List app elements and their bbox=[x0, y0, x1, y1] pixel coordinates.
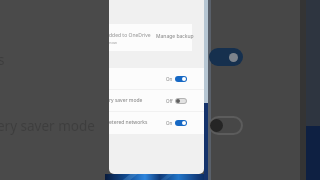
button[interactable]: dded to OneDrive bbox=[109, 24, 192, 51]
button[interactable]: etered networks bbox=[109, 112, 204, 133]
staticText: Off bbox=[166, 98, 173, 104]
staticText: ery saver mode bbox=[0, 117, 95, 135]
staticText: dded to OneDrive bbox=[109, 32, 151, 39]
staticText: Manage backup bbox=[156, 33, 194, 40]
staticText: now bbox=[109, 40, 117, 45]
button[interactable]: ry saver mode bbox=[109, 90, 204, 111]
staticText: ry saver mode bbox=[109, 97, 166, 104]
staticText: etered networks bbox=[109, 119, 166, 126]
staticText: s bbox=[0, 51, 5, 69]
staticText: On bbox=[166, 76, 173, 82]
button[interactable]: On bbox=[109, 68, 204, 89]
staticText: On bbox=[166, 120, 173, 126]
button[interactable]: Battery saver switch, off bbox=[209, 116, 243, 135]
button[interactable]: Sync switch, on bbox=[209, 48, 243, 66]
